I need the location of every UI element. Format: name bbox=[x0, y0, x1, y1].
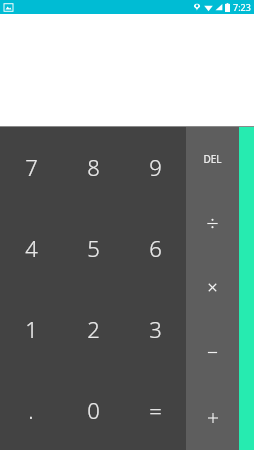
staticText: 9 bbox=[149, 152, 162, 182]
button[interactable]: Minus bbox=[186, 320, 239, 385]
button[interactable]: 9 bbox=[124, 127, 186, 207]
button[interactable]: Multiply bbox=[186, 255, 239, 320]
staticText: 2 bbox=[87, 314, 100, 344]
button[interactable]: = bbox=[124, 369, 186, 450]
staticText: DEL bbox=[203, 152, 222, 166]
staticText: 5 bbox=[87, 233, 100, 263]
button[interactable]: 1 bbox=[0, 288, 62, 369]
button[interactable]: 0 bbox=[62, 369, 124, 450]
button[interactable]: 2 bbox=[62, 288, 124, 369]
button[interactable]: 7 bbox=[0, 127, 62, 207]
staticText: = bbox=[149, 395, 162, 425]
staticText: 7 bbox=[25, 152, 38, 182]
button[interactable]: Delete bbox=[186, 127, 239, 191]
button[interactable]: 3 bbox=[124, 288, 186, 369]
other: Plus bbox=[207, 412, 219, 424]
button[interactable]: 6 bbox=[124, 207, 186, 288]
staticText: 1 bbox=[25, 314, 38, 344]
staticText: 3 bbox=[149, 314, 162, 344]
staticText: 7:23 bbox=[233, 1, 251, 13]
staticText: 8 bbox=[87, 152, 100, 182]
staticText: 0 bbox=[87, 395, 100, 425]
button[interactable]: Plus bbox=[186, 385, 239, 450]
staticText: . bbox=[28, 395, 34, 425]
button[interactable]: 5 bbox=[62, 207, 124, 288]
button[interactable]: Divide bbox=[186, 191, 239, 255]
button[interactable]: . bbox=[0, 369, 62, 450]
other: Screenshot notification bbox=[4, 3, 13, 12]
staticText: 4 bbox=[25, 233, 38, 263]
other: Divide bbox=[206, 217, 219, 230]
other: Delete bbox=[203, 152, 222, 166]
button[interactable]: 8 bbox=[62, 127, 124, 207]
staticText: 6 bbox=[149, 233, 162, 263]
button[interactable]: 4 bbox=[0, 207, 62, 288]
other: Minus bbox=[207, 347, 218, 358]
other: Multiply bbox=[207, 282, 218, 293]
